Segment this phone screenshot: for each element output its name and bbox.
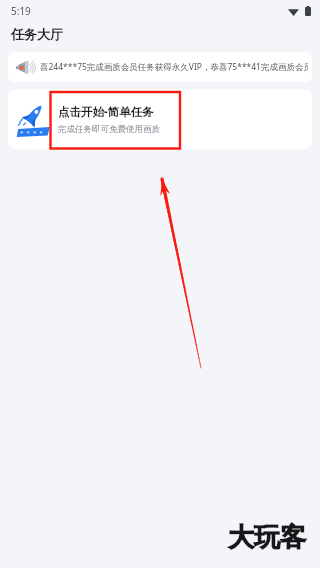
staticText: 喜244***75完成画质会员任务获得永久VIP，恭喜75***41完成画质会员…: [40, 61, 308, 73]
button[interactable]: 公告: [8, 52, 312, 82]
staticText: 任务大厅: [11, 26, 63, 42]
other: 加速助手: [16, 99, 52, 139]
button[interactable]: 加速助手: [8, 89, 312, 149]
staticText: 大玩客: [228, 521, 306, 554]
staticText: 点击开始-简单任务: [58, 104, 154, 120]
other: 公告: [16, 60, 34, 75]
staticText: 完成任务即可免费使用画质: [58, 124, 160, 135]
staticText: 5:19: [11, 4, 31, 18]
